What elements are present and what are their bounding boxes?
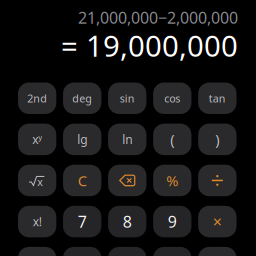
staticText: 9	[168, 211, 177, 232]
button[interactable]: 8	[108, 206, 146, 237]
staticText: = 19,000,000	[61, 26, 238, 65]
staticText: %	[166, 171, 178, 190]
button[interactable]: sin	[108, 82, 146, 114]
button[interactable]: (	[153, 124, 191, 155]
button[interactable]: 5	[108, 247, 146, 256]
staticText: ×	[213, 211, 222, 232]
button[interactable]: x!	[18, 206, 56, 237]
staticText: )	[215, 130, 219, 149]
button[interactable]: Divide	[198, 165, 236, 196]
staticText: cos	[164, 91, 180, 105]
staticText: sin	[120, 91, 135, 105]
button[interactable]: 9	[153, 206, 191, 237]
button[interactable]: Square root	[18, 165, 56, 196]
button[interactable]: )	[198, 124, 236, 155]
button[interactable]: tan	[198, 82, 236, 114]
button[interactable]: lg	[63, 124, 101, 155]
button[interactable]: C	[63, 165, 101, 196]
staticText: xʸ	[32, 131, 42, 147]
button[interactable]: 4	[63, 247, 101, 256]
button[interactable]: %	[153, 165, 191, 196]
button[interactable]: 1/x	[18, 247, 56, 256]
staticText: 8	[123, 211, 132, 232]
staticText: 7	[78, 211, 87, 232]
staticText: lg	[77, 131, 87, 147]
button[interactable]: 2nd	[18, 82, 56, 114]
staticText: ln	[122, 131, 132, 147]
staticText: 21,000,000−2,000,000	[78, 7, 238, 28]
button[interactable]: −	[198, 247, 236, 256]
staticText: (	[170, 130, 174, 149]
button[interactable]: 7	[63, 206, 101, 237]
staticText: tan	[209, 91, 226, 105]
button[interactable]: ×	[198, 206, 236, 237]
button[interactable]: 6	[153, 247, 191, 256]
staticText: C	[78, 171, 87, 190]
button[interactable]: deg	[63, 82, 101, 114]
staticText: 2nd	[27, 91, 47, 105]
staticText: x!	[33, 214, 42, 229]
button[interactable]: ln	[108, 124, 146, 155]
button[interactable]: Delete	[108, 165, 146, 196]
staticText: x	[37, 175, 43, 189]
button[interactable]: xʸ	[18, 124, 56, 155]
staticText: deg	[72, 91, 92, 105]
button[interactable]: cos	[153, 82, 191, 114]
